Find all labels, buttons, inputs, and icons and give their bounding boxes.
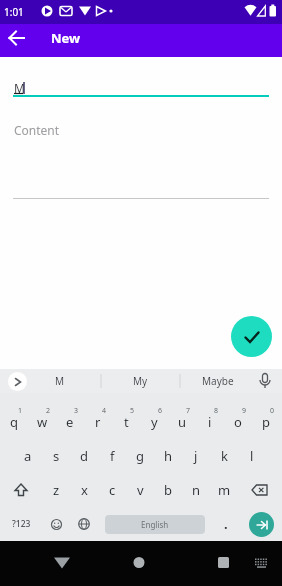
staticText: 3 xyxy=(74,406,79,416)
staticText: t xyxy=(124,413,129,431)
button[interactable]: y xyxy=(140,405,168,439)
button[interactable]: My xyxy=(120,369,160,393)
staticText: 1 xyxy=(18,406,23,416)
button[interactable]: h xyxy=(154,439,182,473)
staticText: j xyxy=(194,447,198,465)
button[interactable]: English xyxy=(98,507,212,541)
staticText: x xyxy=(81,481,88,499)
button[interactable] xyxy=(240,507,282,541)
button[interactable] xyxy=(42,507,70,541)
staticText: 2 xyxy=(46,406,51,416)
staticText: 6 xyxy=(158,406,163,416)
button[interactable] xyxy=(70,507,98,541)
button[interactable]: c xyxy=(98,473,126,507)
button[interactable]: i xyxy=(196,405,224,439)
button[interactable]: u xyxy=(168,405,196,439)
staticText: q xyxy=(10,413,18,431)
staticText: g xyxy=(136,447,144,465)
staticText: u xyxy=(178,413,187,431)
staticText: n xyxy=(192,481,201,499)
staticText: e xyxy=(66,413,74,431)
button[interactable]: b xyxy=(154,473,182,507)
staticText: 5 xyxy=(130,406,135,416)
staticText: m xyxy=(218,481,231,499)
staticText: a xyxy=(24,447,32,465)
staticText: Maybe xyxy=(202,374,234,388)
button[interactable]: a xyxy=(14,439,42,473)
staticText: z xyxy=(53,481,60,499)
staticText: My xyxy=(133,374,148,388)
button[interactable]: g xyxy=(126,439,154,473)
staticText: k xyxy=(221,447,228,465)
button[interactable] xyxy=(0,541,94,586)
button[interactable] xyxy=(231,316,272,357)
staticText: f xyxy=(110,447,115,465)
button[interactable]: ?123 xyxy=(0,507,42,541)
button[interactable]: l xyxy=(238,439,266,473)
staticText: ?123 xyxy=(12,518,31,530)
staticText: . xyxy=(224,515,228,533)
button[interactable]: . xyxy=(212,507,240,541)
staticText: 8 xyxy=(214,406,219,416)
button[interactable] xyxy=(0,24,33,52)
staticText: 1:01 xyxy=(4,5,24,19)
staticText: M xyxy=(55,374,65,388)
staticText: w xyxy=(37,413,48,431)
button[interactable]: e xyxy=(56,405,84,439)
staticText: i xyxy=(208,413,212,431)
staticText: o xyxy=(234,413,242,431)
button[interactable] xyxy=(0,473,42,507)
staticText: 0 xyxy=(270,406,275,416)
button[interactable]: o xyxy=(224,405,252,439)
staticText: 4 xyxy=(102,406,107,416)
staticText: M xyxy=(14,80,25,96)
staticText: 7 xyxy=(186,406,191,416)
button[interactable]: j xyxy=(182,439,210,473)
staticText: b xyxy=(164,481,172,499)
button[interactable]: k xyxy=(210,439,238,473)
staticText: Content xyxy=(14,122,60,138)
staticText: English xyxy=(141,519,169,530)
button[interactable]: Maybe xyxy=(195,369,241,393)
staticText: l xyxy=(250,447,254,465)
staticText: New xyxy=(51,29,81,47)
button[interactable]: n xyxy=(182,473,210,507)
staticText: v xyxy=(137,481,144,499)
staticText: s xyxy=(53,447,60,465)
button[interactable] xyxy=(238,473,281,507)
button[interactable]: x xyxy=(70,473,98,507)
button[interactable]: m xyxy=(210,473,238,507)
staticText: c xyxy=(109,481,116,499)
button[interactable] xyxy=(94,541,188,586)
button[interactable]: t xyxy=(112,405,140,439)
button[interactable] xyxy=(8,372,27,391)
button[interactable]: d xyxy=(70,439,98,473)
button[interactable]: M xyxy=(40,369,80,393)
button[interactable]: w xyxy=(28,405,56,439)
button[interactable] xyxy=(188,541,282,586)
button[interactable]: s xyxy=(42,439,70,473)
button[interactable]: r xyxy=(84,405,112,439)
staticText: y xyxy=(151,413,158,431)
button[interactable]: q xyxy=(0,405,28,439)
button[interactable]: f xyxy=(98,439,126,473)
button[interactable]: p xyxy=(252,405,280,439)
staticText: p xyxy=(262,413,270,431)
staticText: r xyxy=(95,413,101,431)
button[interactable]: v xyxy=(126,473,154,507)
staticText: h xyxy=(164,447,173,465)
button[interactable]: z xyxy=(42,473,70,507)
staticText: d xyxy=(80,447,88,465)
staticText: 9 xyxy=(242,406,247,416)
